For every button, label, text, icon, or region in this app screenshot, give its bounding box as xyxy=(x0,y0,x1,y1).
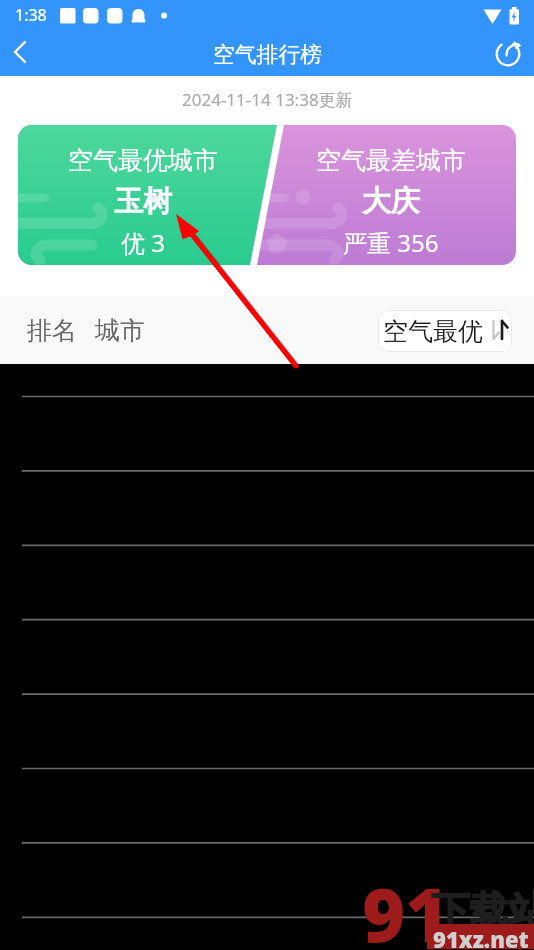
button[interactable]: 空气最优城市 xyxy=(18,125,259,265)
staticText: 严重 356 xyxy=(343,226,439,259)
staticText: 2024-11-14 13:38更新 xyxy=(182,88,353,111)
staticText: 空气最差城市 xyxy=(316,145,466,176)
staticText: 城市 xyxy=(95,315,145,346)
staticText: 下载站 xyxy=(431,886,534,935)
staticText: 玉树 xyxy=(114,183,172,220)
button[interactable]: Refresh xyxy=(486,32,530,76)
button[interactable]: 空气最优 xyxy=(378,310,512,352)
staticText: 大庆 xyxy=(362,183,420,220)
staticText: 1:38 xyxy=(15,4,47,26)
staticText: 91xz.net xyxy=(433,924,529,949)
staticText: 优 3 xyxy=(121,226,165,259)
staticText: 空气最优 xyxy=(383,316,483,347)
button[interactable]: Back xyxy=(0,30,42,74)
staticText: 91 xyxy=(362,863,449,950)
staticText: 排名 xyxy=(27,315,77,346)
staticText: 空气排行榜 xyxy=(213,41,322,68)
button[interactable]: 空气最差城市 xyxy=(258,125,516,265)
staticText: 空气最优城市 xyxy=(68,145,218,176)
